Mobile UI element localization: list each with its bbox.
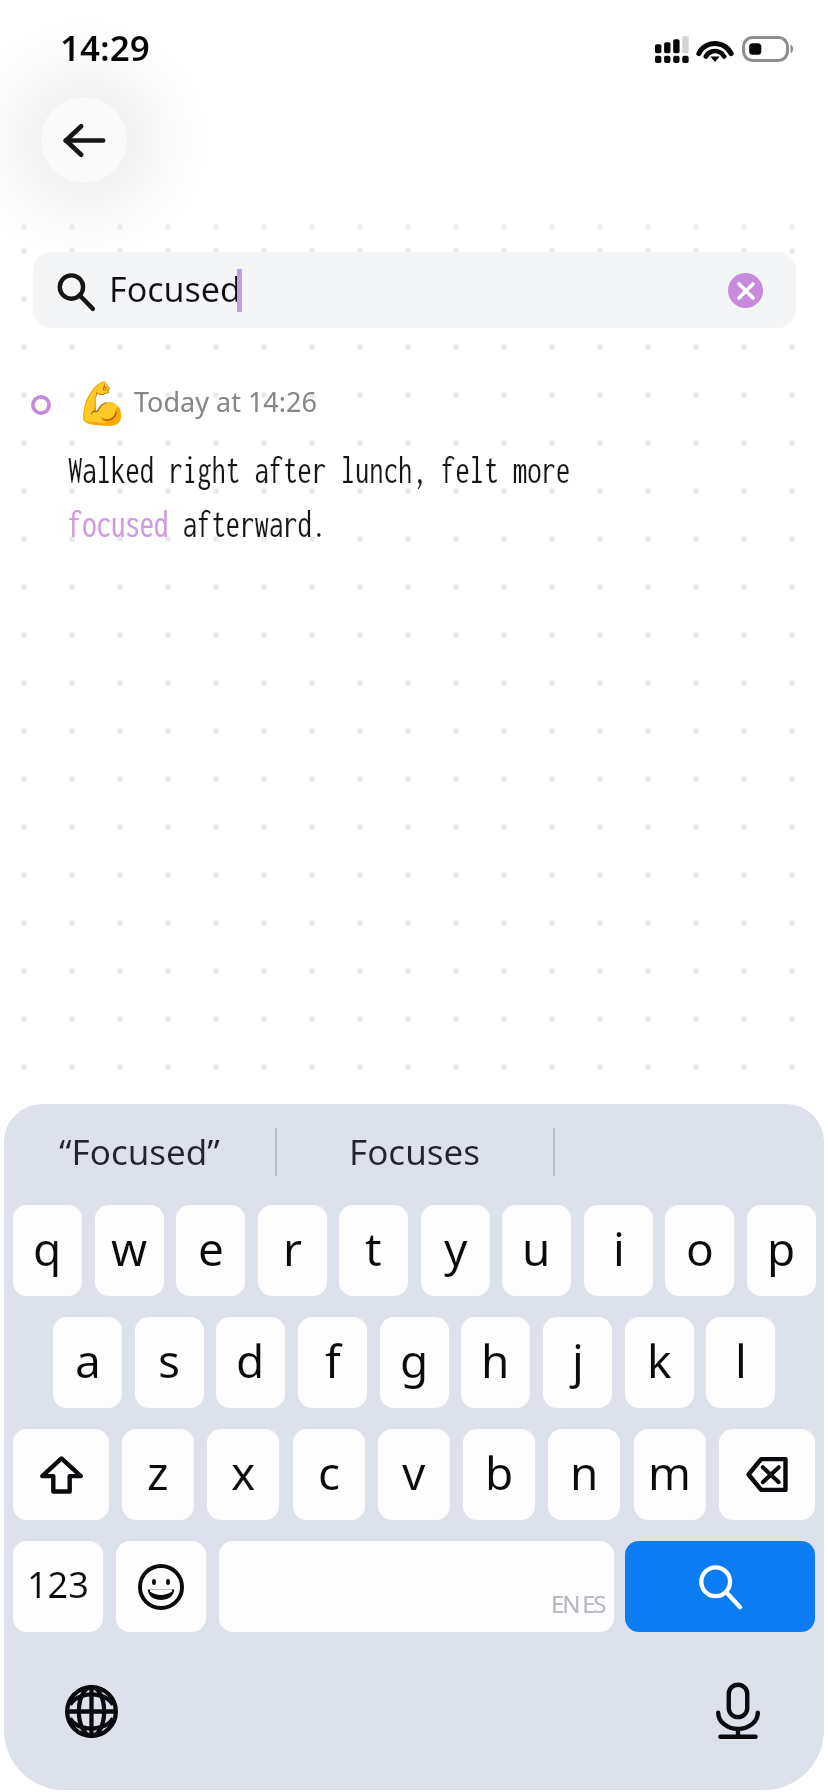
staticText: o: [686, 1217, 714, 1280]
button[interactable]: Shift: [13, 1429, 109, 1520]
button[interactable]: Change keyboard language: [55, 1675, 127, 1747]
button[interactable]: q: [13, 1205, 82, 1296]
staticText: u: [522, 1217, 551, 1280]
button[interactable]: z: [122, 1429, 194, 1520]
button[interactable]: “Focused”: [4, 1104, 275, 1200]
staticText: k: [647, 1329, 672, 1392]
staticText: l: [735, 1329, 747, 1392]
staticText: c: [318, 1441, 341, 1504]
button[interactable]: r: [258, 1205, 327, 1296]
staticText: EN ES: [551, 1587, 605, 1620]
button[interactable]: g: [380, 1317, 449, 1408]
staticText: 123: [27, 1560, 89, 1609]
button[interactable]: e: [176, 1205, 245, 1296]
staticText: d: [236, 1329, 265, 1392]
staticText: a: [75, 1329, 101, 1392]
button[interactable]: 123: [13, 1541, 103, 1632]
staticText: b: [485, 1441, 514, 1504]
staticText: Today at 14:26: [134, 383, 317, 420]
staticText: x: [231, 1441, 256, 1504]
button[interactable]: f: [298, 1317, 367, 1408]
staticText: 14:29: [60, 24, 150, 72]
button[interactable]: d: [216, 1317, 285, 1408]
button[interactable]: i: [584, 1205, 653, 1296]
button[interactable]: Search: [625, 1541, 815, 1632]
button[interactable]: k: [625, 1317, 694, 1408]
staticText: Walked right after lunch, felt more focu…: [68, 448, 571, 545]
staticText: r: [283, 1217, 302, 1280]
button[interactable]: Emoji: [116, 1541, 206, 1632]
button[interactable]: b: [463, 1429, 535, 1520]
button[interactable]: Focuses: [277, 1104, 553, 1200]
staticText: w: [111, 1217, 148, 1280]
staticText: Focuses: [349, 1128, 481, 1176]
button[interactable]: Clear search: [728, 273, 763, 308]
staticText: v: [402, 1441, 426, 1504]
button[interactable]: w: [95, 1205, 164, 1296]
button[interactable]: Space: [219, 1541, 614, 1632]
staticText: “Focused”: [59, 1128, 220, 1176]
staticText: m: [648, 1441, 692, 1504]
staticText: s: [158, 1329, 181, 1392]
button[interactable]: Back: [41, 97, 127, 183]
button[interactable]: Backspace: [719, 1429, 815, 1520]
button[interactable]: l: [706, 1317, 775, 1408]
button[interactable]: h: [461, 1317, 530, 1408]
staticText: Focused: [109, 266, 241, 312]
staticText: i: [613, 1217, 625, 1280]
staticText: g: [400, 1329, 429, 1392]
staticText: h: [481, 1329, 510, 1392]
button[interactable]: v: [378, 1429, 450, 1520]
button[interactable]: a: [53, 1317, 122, 1408]
staticText: t: [365, 1217, 382, 1280]
button[interactable]: t: [339, 1205, 408, 1296]
staticText: n: [570, 1441, 599, 1504]
staticText: p: [767, 1217, 796, 1280]
button[interactable]: c: [293, 1429, 365, 1520]
button[interactable]: p: [747, 1205, 816, 1296]
staticText: e: [198, 1217, 224, 1280]
staticText: z: [147, 1441, 169, 1504]
button[interactable]: m: [634, 1429, 706, 1520]
staticText: 💪: [76, 379, 129, 428]
staticText: y: [444, 1217, 468, 1280]
button[interactable]: Focused: [33, 252, 796, 328]
button[interactable]: j: [543, 1317, 612, 1408]
staticText: q: [33, 1217, 62, 1280]
button[interactable]: o: [665, 1205, 734, 1296]
button[interactable]: x: [207, 1429, 279, 1520]
staticText: f: [325, 1329, 341, 1392]
button[interactable]: Voice input: [702, 1675, 774, 1747]
staticText: j: [572, 1329, 584, 1392]
button[interactable]: 💪: [0, 378, 828, 558]
button[interactable]: n: [548, 1429, 620, 1520]
button[interactable]: y: [421, 1205, 490, 1296]
button[interactable]: s: [135, 1317, 204, 1408]
button[interactable]: u: [502, 1205, 571, 1296]
